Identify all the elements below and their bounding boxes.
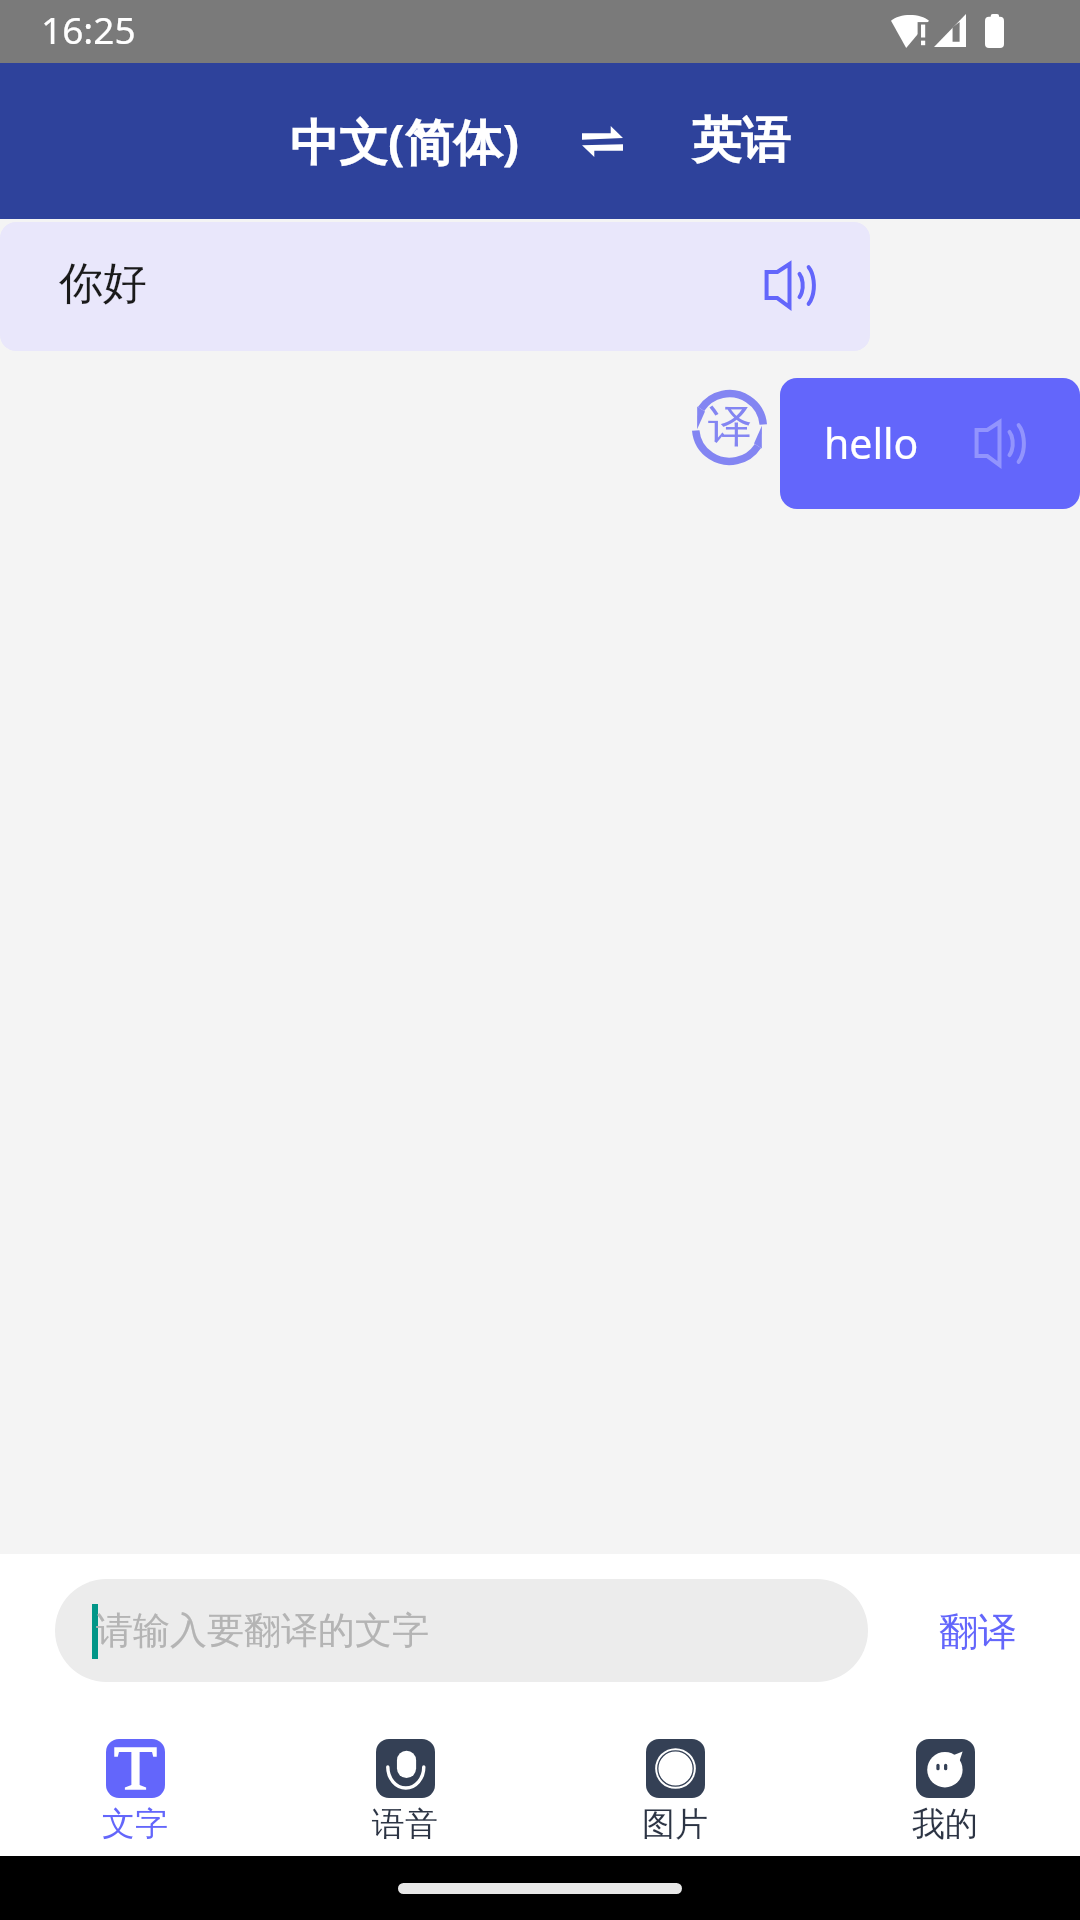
- button[interactable]: 文字: [0, 1735, 270, 1849]
- staticText: 我的: [912, 1803, 978, 1845]
- button[interactable]: 语音: [270, 1735, 540, 1849]
- staticText: 语音: [372, 1803, 438, 1845]
- staticText: 中文(简体): [290, 108, 520, 175]
- button[interactable]: Translation engine: [692, 390, 767, 465]
- button[interactable]: hello: [780, 378, 1080, 509]
- staticText: 你好: [59, 256, 147, 311]
- staticText: 16:25: [41, 4, 136, 54]
- staticText: 图片: [642, 1803, 708, 1845]
- button[interactable]: 我的: [810, 1735, 1080, 1849]
- staticText: hello: [824, 415, 919, 471]
- button[interactable]: 图片: [540, 1735, 810, 1849]
- staticText: 翻译: [939, 1607, 1017, 1656]
- staticText: 请输入要翻译的文字: [96, 1607, 429, 1654]
- staticText: 译: [708, 399, 752, 454]
- button[interactable]: Swap languages: [570, 114, 635, 169]
- button[interactable]: 中文(简体): [278, 98, 532, 185]
- staticText: 英语: [692, 110, 790, 172]
- button[interactable]: 请输入要翻译的文字: [55, 1579, 868, 1682]
- button[interactable]: 你好: [0, 222, 870, 351]
- button[interactable]: Play translation audio: [959, 406, 1040, 481]
- button[interactable]: Play source audio: [749, 248, 830, 323]
- button[interactable]: 翻译: [929, 1597, 1027, 1666]
- button[interactable]: 英语: [680, 100, 802, 182]
- staticText: 文字: [102, 1803, 168, 1845]
